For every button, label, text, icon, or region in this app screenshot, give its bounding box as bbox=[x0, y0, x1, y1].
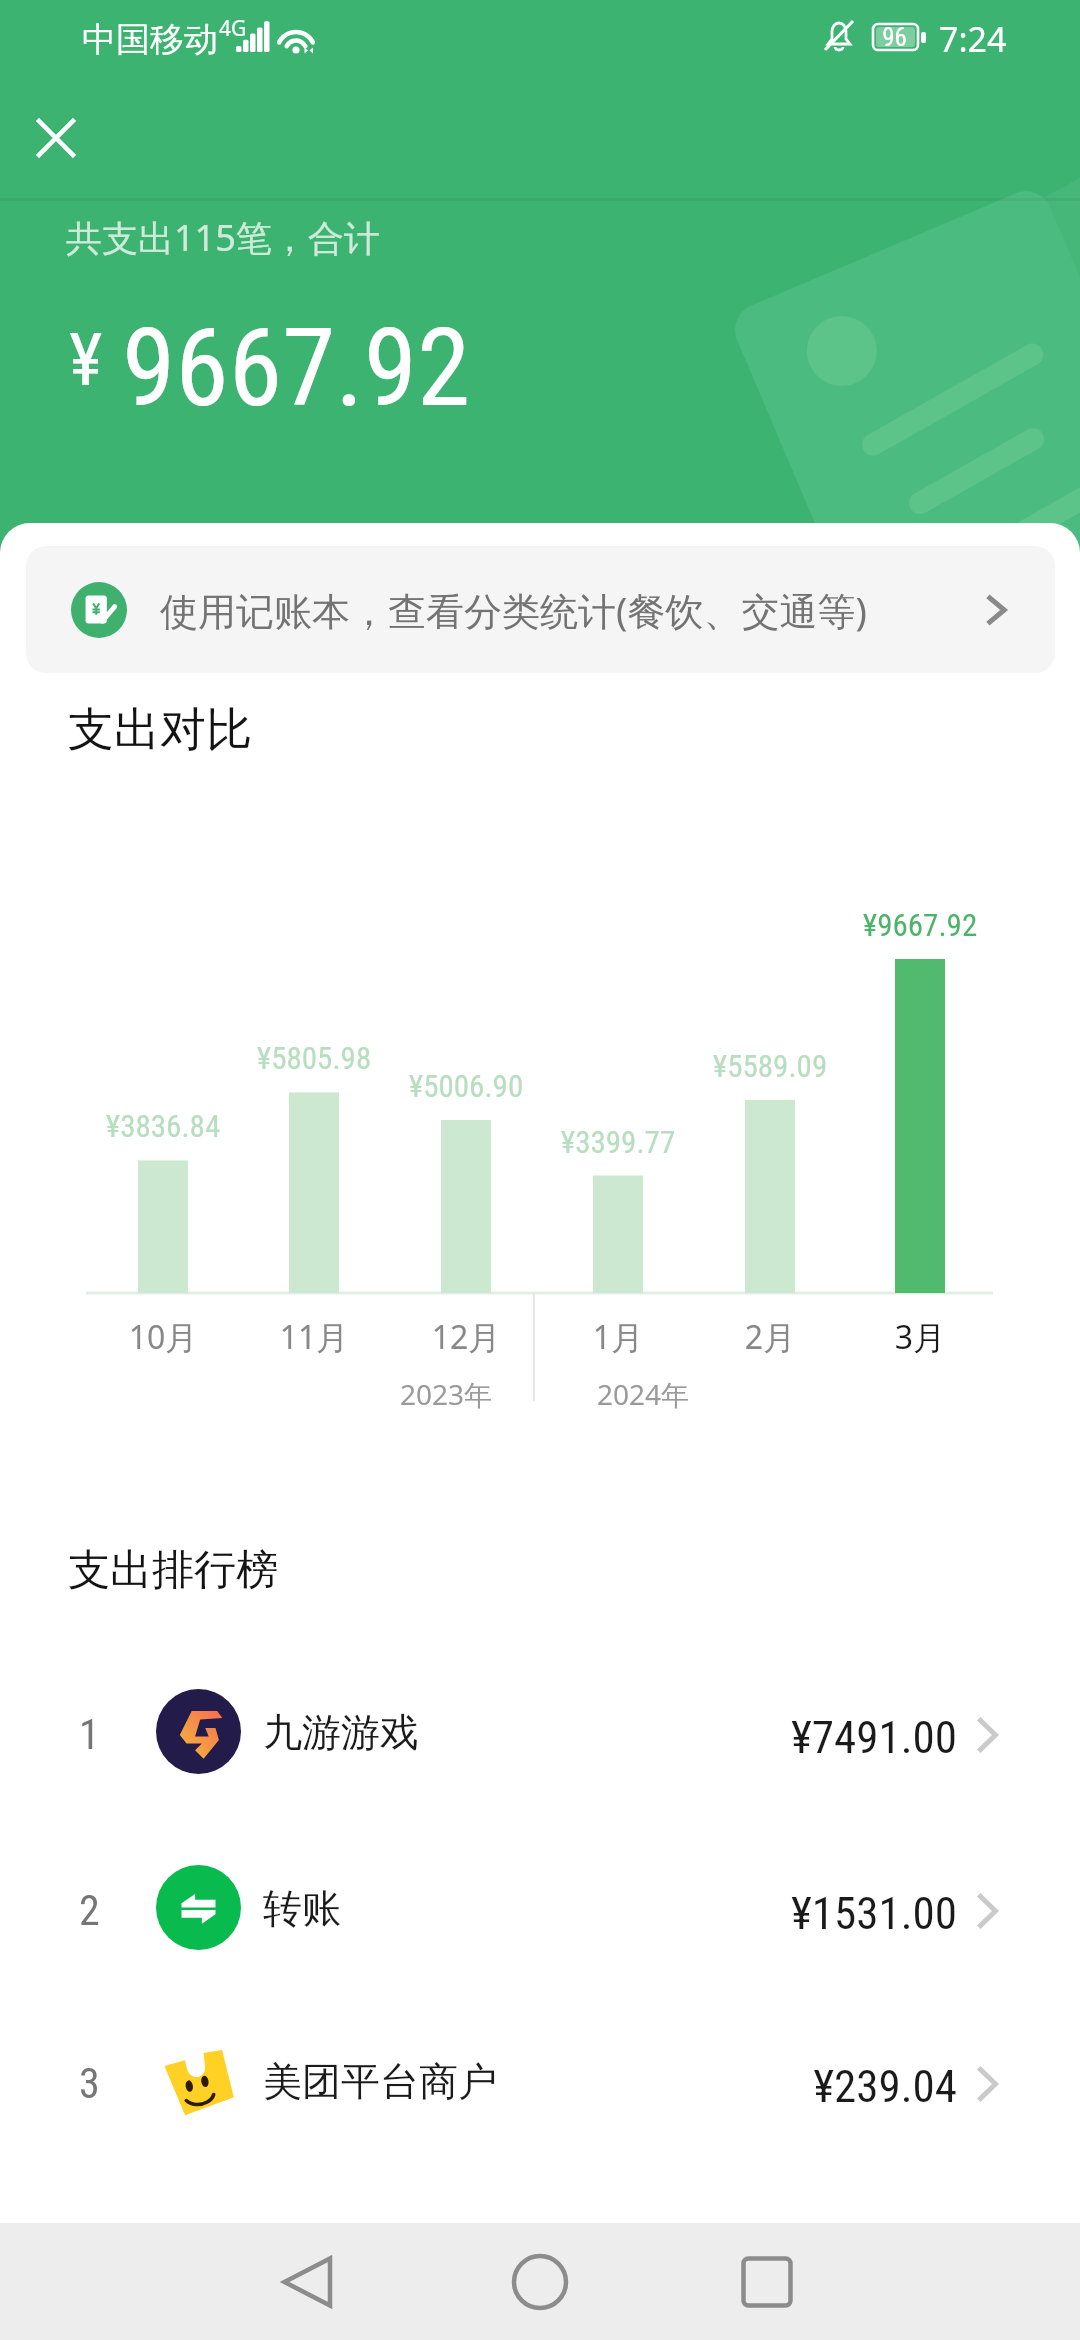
staticText: 共支出115笔，合计 bbox=[66, 213, 380, 262]
staticText: 中国移动 bbox=[82, 18, 218, 61]
staticText: 九游游戏 bbox=[263, 1708, 419, 1757]
staticText: 2024年 bbox=[533, 1375, 753, 1413]
staticText: ¥5805.98 bbox=[204, 1040, 424, 1076]
staticText: ¥3836.84 bbox=[53, 1108, 273, 1144]
staticText: ¥5006.90 bbox=[356, 1068, 576, 1104]
staticText: 2 bbox=[79, 1886, 100, 1935]
staticText: 支出排行榜 bbox=[68, 1544, 278, 1597]
button[interactable]: 1 bbox=[0, 1669, 1080, 1793]
staticText: 4G bbox=[219, 14, 247, 43]
staticText: 10月 bbox=[53, 1315, 273, 1359]
staticText: 转账 bbox=[263, 1884, 341, 1933]
staticText: 11月 bbox=[204, 1315, 424, 1359]
staticText: 使用记账本，查看分类统计(餐饮、交通等) bbox=[160, 584, 867, 636]
staticText: 支出对比 bbox=[68, 701, 252, 759]
button[interactable]: 2 bbox=[0, 1845, 1080, 1969]
staticText: ¥9667.92 bbox=[810, 907, 1030, 943]
staticText: ¥3399.77 bbox=[508, 1124, 728, 1160]
staticText: 2023年 bbox=[336, 1375, 556, 1413]
staticText: ¥239.04 bbox=[653, 2060, 957, 2113]
staticText: ¥ bbox=[69, 318, 103, 402]
button[interactable]: Back bbox=[228, 2223, 388, 2340]
staticText: 7:24 bbox=[939, 16, 1007, 62]
staticText: ¥5589.09 bbox=[660, 1048, 880, 1084]
button[interactable]: 使用记账本，查看分类统计(餐饮、交通等) bbox=[26, 546, 1055, 673]
button[interactable]: Recents bbox=[687, 2223, 847, 2340]
staticText: ¥7491.00 bbox=[653, 1711, 957, 1764]
staticText: 96 bbox=[871, 23, 918, 52]
staticText: 12月 bbox=[356, 1315, 576, 1359]
button[interactable]: Close bbox=[14, 96, 98, 180]
staticText: ¥1531.00 bbox=[653, 1887, 957, 1940]
staticText: 美团平台商户 bbox=[263, 2057, 497, 2106]
staticText: 2月 bbox=[660, 1315, 880, 1359]
staticText: 1 bbox=[79, 1710, 100, 1759]
staticText: 9667.92 bbox=[122, 305, 471, 432]
staticText: 3 bbox=[79, 2059, 100, 2108]
button[interactable]: Home bbox=[460, 2223, 620, 2340]
button[interactable]: 3 bbox=[0, 2018, 1080, 2142]
staticText: 3月 bbox=[810, 1315, 1030, 1359]
staticText: 1月 bbox=[508, 1315, 728, 1359]
